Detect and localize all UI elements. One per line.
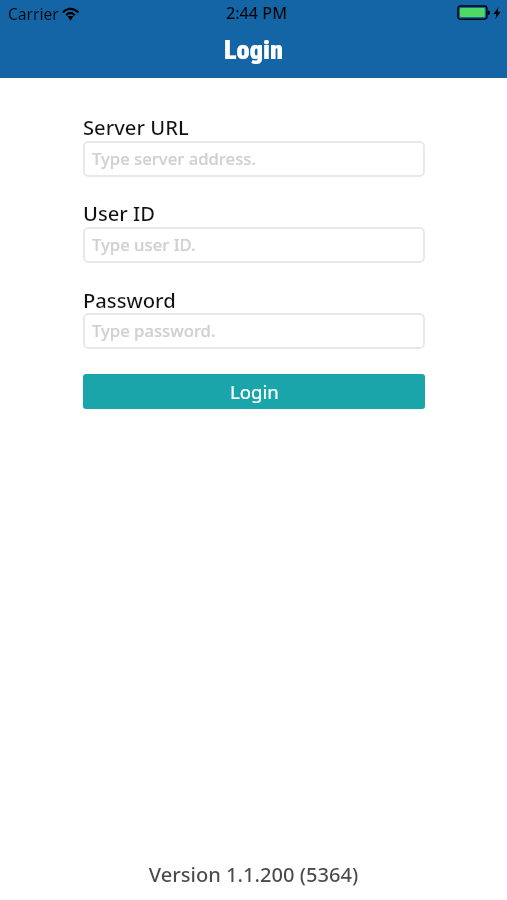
staticText: 2:44 PM — [3, 2, 507, 24]
staticText: Server URL — [83, 113, 189, 141]
staticText: User ID — [83, 199, 155, 227]
other: Charging — [493, 7, 501, 19]
button[interactable]: Type server address. — [83, 141, 425, 177]
button[interactable]: Type user ID. — [83, 227, 425, 263]
button[interactable]: Login — [83, 374, 425, 409]
other: Wi-Fi signal — [61, 6, 80, 20]
button[interactable]: Type password. — [83, 313, 425, 349]
staticText: Type server address. — [92, 147, 256, 170]
staticText: Login — [230, 379, 279, 404]
other: Battery full — [456, 4, 492, 22]
staticText: Password — [83, 286, 176, 314]
staticText: Type user ID. — [92, 233, 196, 256]
staticText: Carrier — [8, 3, 59, 24]
staticText: Login — [0, 35, 507, 66]
staticText: Type password. — [92, 319, 216, 342]
staticText: Version 1.1.200 (5364) — [0, 861, 507, 888]
